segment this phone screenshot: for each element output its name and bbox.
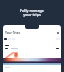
staticText: Your Trips: [5, 31, 20, 34]
button[interactable]: [4, 38, 7, 40]
staticText: Fully manage your trips: [20, 8, 44, 17]
